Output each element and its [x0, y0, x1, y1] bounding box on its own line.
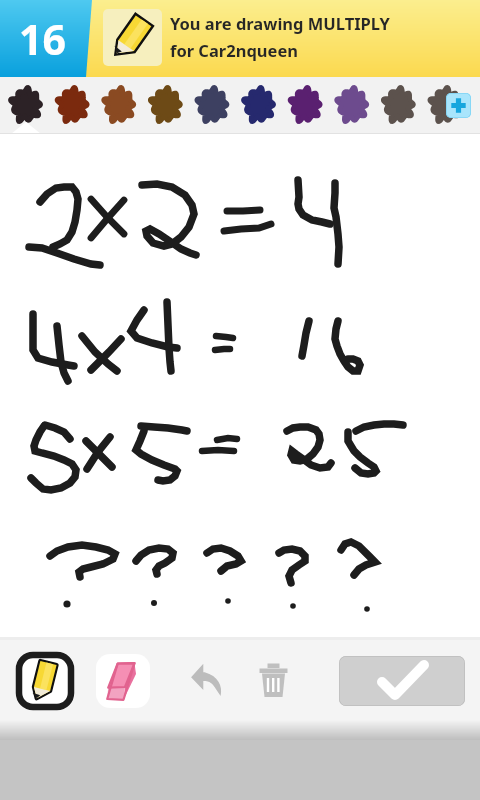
- staticText: 16: [19, 11, 66, 67]
- staticText: for Car2nqueen: [170, 39, 298, 61]
- button[interactable]: Drawing: [103, 9, 162, 66]
- staticText: You are drawing MULTIPLY: [170, 12, 390, 34]
- button[interactable]: Add colour: [446, 93, 471, 118]
- button[interactable]: Eraser tool: [94, 652, 152, 710]
- button[interactable]: Done: [339, 656, 465, 706]
- button[interactable]: Clear drawing: [258, 662, 290, 700]
- button[interactable]: Undo: [188, 661, 224, 699]
- button[interactable]: Pencil tool: [16, 652, 74, 710]
